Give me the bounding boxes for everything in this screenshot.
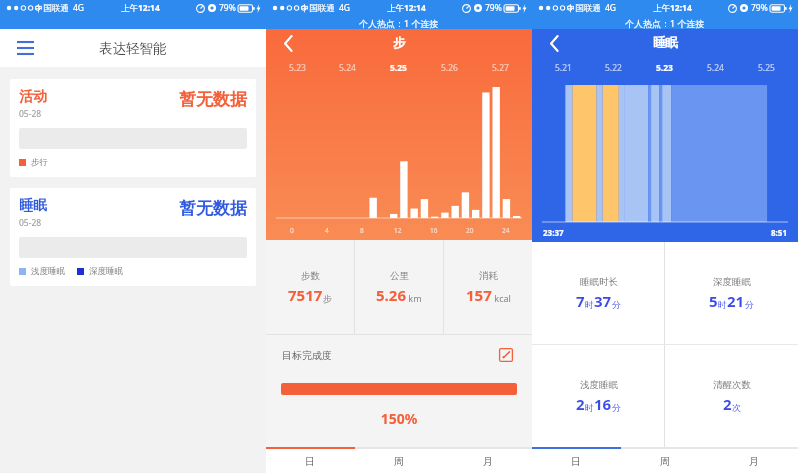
staticText: 79% [219, 2, 236, 14]
staticText: 步 [393, 35, 406, 51]
staticText: 20 [466, 226, 474, 235]
staticText: 公里 [390, 270, 409, 282]
staticText: 睡眠 [19, 197, 47, 215]
staticText: 24 [502, 226, 510, 235]
staticText: 0 [290, 226, 294, 235]
staticText: 05-28 [19, 108, 42, 120]
staticText: 8:51 [771, 227, 787, 238]
staticText: 上午 [121, 3, 138, 14]
button[interactable]: 日 [266, 449, 354, 473]
staticText: 5.22 [605, 62, 622, 74]
staticText: 次 [732, 402, 741, 413]
staticText: 8 [360, 226, 364, 235]
staticText: 150% [266, 409, 532, 428]
staticText: 消耗 [479, 270, 498, 282]
button[interactable]: 5.23 [272, 60, 322, 76]
button[interactable]: 5.25 [741, 60, 792, 76]
staticText: 4G [73, 2, 85, 14]
staticText: 5.27 [492, 62, 509, 74]
staticText: 分 [745, 299, 754, 310]
staticText: 16 [430, 226, 438, 235]
staticText: 5 [709, 291, 718, 311]
staticText: 05-28 [19, 217, 42, 229]
staticText: 5.21 [555, 62, 572, 74]
staticText: 步行 [31, 157, 48, 168]
staticText: km [406, 292, 422, 304]
staticText: 时 [585, 402, 594, 413]
button[interactable]: 睡眠时长 [532, 242, 664, 344]
staticText: 12:14 [138, 2, 160, 14]
button[interactable]: 5.23 [639, 60, 690, 76]
staticText: 表达轻智能 [99, 40, 167, 57]
staticText: 浅度睡眠 [31, 266, 65, 277]
staticText: 暂无数据 [179, 198, 247, 219]
button[interactable]: 5.27 [475, 60, 526, 76]
staticText: 步数 [301, 270, 320, 282]
staticText: 中国联通 [35, 3, 69, 14]
staticText: 月 [483, 455, 493, 468]
staticText: 周 [660, 455, 670, 468]
staticText: 7517 [288, 285, 323, 305]
staticText: 5.23 [289, 62, 306, 74]
staticText: 2 [576, 394, 585, 414]
staticText: 2 [723, 394, 732, 414]
button[interactable]: 周 [354, 449, 443, 473]
button[interactable]: 月 [709, 449, 798, 473]
button[interactable]: Back [274, 29, 302, 57]
button[interactable]: 深度睡眠 [665, 242, 798, 344]
staticText: 分 [612, 299, 621, 310]
staticText: 活动 [19, 88, 47, 106]
button[interactable]: 5.24 [322, 60, 373, 76]
staticText: 分 [612, 402, 621, 413]
staticText: 月 [749, 455, 759, 468]
staticText: 4G [605, 2, 617, 14]
button[interactable]: 月 [443, 449, 532, 473]
staticText: 157 [466, 285, 492, 305]
button[interactable]: Menu [12, 35, 38, 61]
staticText: 7 [576, 291, 585, 311]
button[interactable]: Edit goal [496, 345, 516, 365]
staticText: 5.23 [656, 62, 673, 74]
staticText: 5.24 [339, 62, 356, 74]
staticText: 79% [485, 2, 502, 14]
staticText: 步 [323, 293, 332, 304]
staticText: 日 [305, 455, 315, 468]
staticText: 5.26 [376, 285, 406, 305]
staticText: 4G [339, 2, 351, 14]
staticText: kcal [492, 292, 511, 304]
staticText: 5.26 [441, 62, 458, 74]
button[interactable]: 5.21 [538, 60, 588, 76]
staticText: 个人热点：1 个连接 [359, 17, 439, 29]
staticText: 16 [594, 394, 612, 414]
staticText: 时 [585, 299, 594, 310]
staticText: 暂无数据 [179, 89, 247, 110]
staticText: 日 [571, 455, 581, 468]
button[interactable]: 睡眠 [10, 188, 256, 286]
button[interactable]: 浅度睡眠 [532, 345, 664, 447]
staticText: 4 [325, 226, 329, 235]
staticText: 37 [594, 291, 612, 311]
button[interactable]: 周 [620, 449, 709, 473]
staticText: 上午 [653, 3, 670, 14]
staticText: 5.24 [707, 62, 724, 74]
button[interactable]: 活动 [10, 79, 256, 177]
staticText: 周 [394, 455, 404, 468]
staticText: 23:37 [543, 227, 564, 238]
staticText: 时 [718, 299, 727, 310]
button[interactable]: 5.25 [373, 60, 424, 76]
staticText: 个人热点：1 个连接 [625, 17, 705, 29]
staticText: 21 [727, 291, 745, 311]
staticText: 目标完成度 [282, 349, 332, 362]
button[interactable]: 清醒次数 [665, 345, 798, 447]
button[interactable]: 5.22 [588, 60, 639, 76]
button[interactable]: 5.24 [690, 60, 741, 76]
staticText: 12 [394, 226, 402, 235]
staticText: 上午 [387, 3, 404, 14]
staticText: 睡眠 [653, 35, 678, 51]
staticText: 5.25 [390, 62, 407, 74]
staticText: 清醒次数 [713, 379, 751, 391]
button[interactable]: 日 [532, 449, 620, 473]
staticText: 中国联通 [567, 3, 601, 14]
button[interactable]: 5.26 [424, 60, 475, 76]
button[interactable]: Back [540, 29, 568, 57]
